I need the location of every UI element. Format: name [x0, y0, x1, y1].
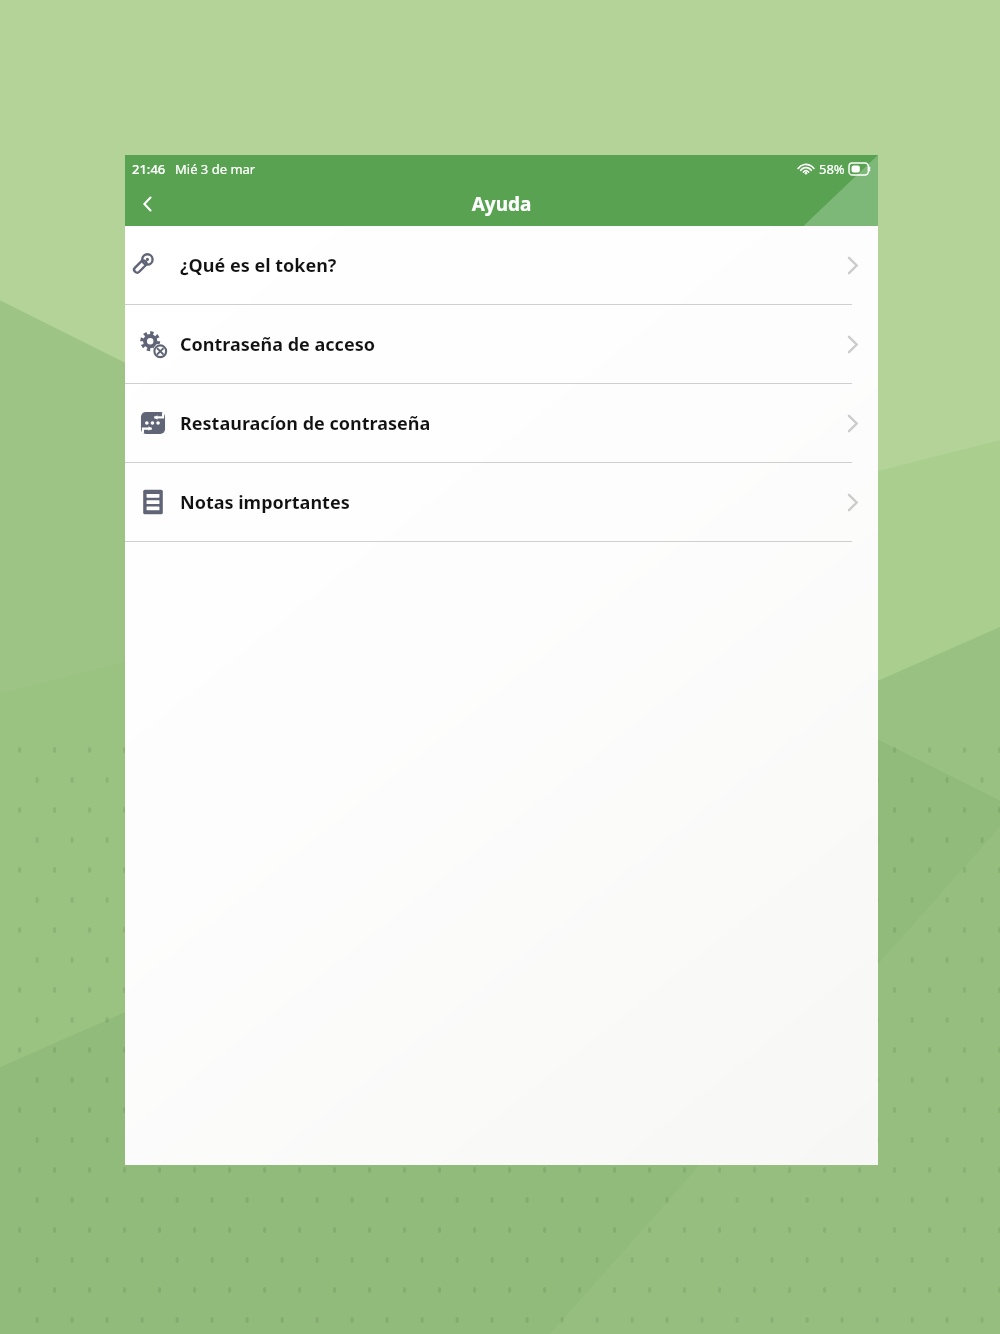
button[interactable]: Notas importantes	[125, 463, 878, 541]
staticText: Ayuda	[125, 191, 878, 217]
staticText: Contraseña de acceso	[180, 332, 375, 357]
button[interactable]: Contraseña de acceso	[125, 305, 878, 383]
button[interactable]: Back	[125, 182, 171, 226]
staticText: Notas importantes	[180, 490, 350, 515]
staticText: 58%	[819, 160, 845, 178]
staticText: Mié 3 de mar	[175, 160, 256, 178]
staticText: Restauracíon de contraseña	[180, 411, 431, 436]
staticText: ¿Qué es el token?	[180, 253, 337, 278]
button[interactable]: Restauracíon de contraseña	[125, 384, 878, 462]
button[interactable]: ¿Qué es el token?	[125, 226, 878, 304]
staticText: 21:46	[132, 160, 166, 178]
